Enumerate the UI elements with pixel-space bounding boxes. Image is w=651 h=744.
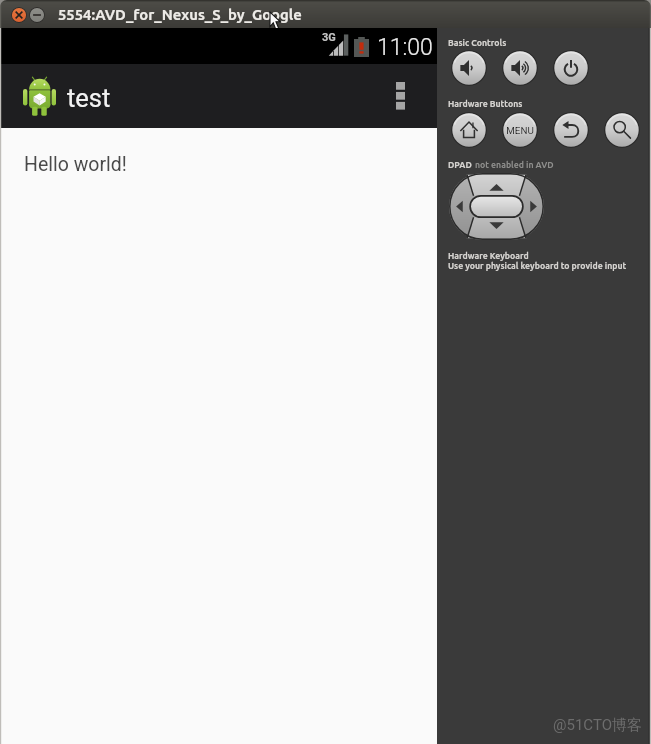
button[interactable]: Volume up	[502, 50, 538, 86]
button[interactable]: Back	[553, 112, 589, 148]
staticText: Use your physical keyboard to provide in…	[448, 261, 627, 271]
button[interactable]: MENU	[502, 112, 538, 148]
staticText: 3G	[322, 31, 336, 44]
button[interactable]: Volume down	[451, 50, 487, 86]
button[interactable]: Search	[604, 112, 640, 148]
staticText: MENU	[506, 125, 534, 136]
button[interactable]: More options	[379, 64, 421, 128]
button[interactable]: Home	[451, 112, 487, 148]
staticText: Hardware Keyboard	[448, 251, 529, 261]
staticText: Hello world!	[24, 153, 127, 176]
staticText: test	[67, 83, 111, 113]
staticText: 11:00	[377, 34, 433, 61]
staticText: DPAD	[448, 160, 472, 170]
staticText: Basic Controls	[448, 38, 507, 48]
button[interactable]: Minimize window	[29, 7, 45, 23]
staticText: Hardware Buttons	[448, 99, 523, 109]
button[interactable]: D-pad	[449, 173, 544, 240]
staticText: @51CTO博客	[553, 716, 642, 735]
button[interactable]: Power	[553, 50, 589, 86]
staticText: not enabled in AVD	[475, 160, 554, 170]
button[interactable]: Close window	[11, 7, 27, 23]
staticText: 5554:AVD_for_Nexus_S_by_Google	[58, 6, 302, 23]
